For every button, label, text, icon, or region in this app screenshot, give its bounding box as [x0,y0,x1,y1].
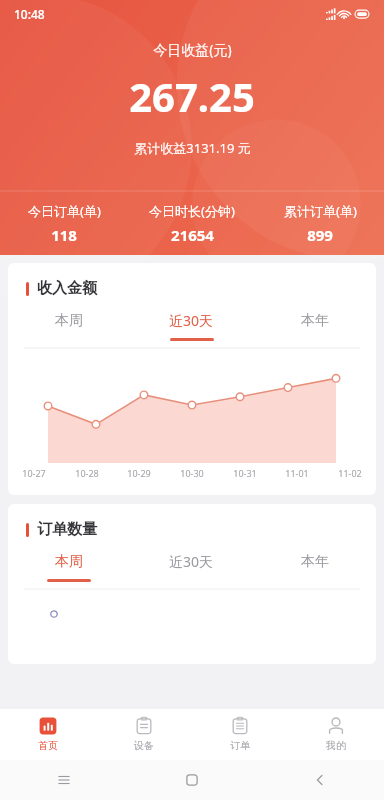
staticText: 今日时长(分钟) [149,202,235,220]
staticText: 首页 [38,739,58,752]
staticText: 10-27 [22,467,46,479]
button[interactable]: Recents [56,772,72,788]
button[interactable]: 本年 [253,545,376,589]
staticText: 899 [307,225,333,245]
staticText: 今日订单(单) [28,202,101,220]
staticText: 本年 [301,312,329,330]
button[interactable]: 设备 [96,708,192,760]
button[interactable]: 今日订单(单) [0,202,128,245]
button[interactable]: 订单 [192,708,288,760]
button[interactable]: 累计订单(单) [256,202,384,245]
staticText: 我的 [326,739,346,752]
staticText: 本周 [55,312,83,330]
staticText: 267.25 [129,69,255,123]
staticText: 11-01 [285,467,309,479]
button[interactable]: 首页 [0,708,96,760]
button[interactable]: 今日时长(分钟) [128,202,256,245]
staticText: 近30天 [169,311,214,330]
button[interactable]: Back [312,772,328,788]
staticText: 订单数量 [37,520,97,539]
staticText: 本年 [301,553,329,571]
staticText: 订单 [230,739,250,752]
staticText: 累计订单(单) [284,202,357,220]
staticText: 118 [51,225,77,245]
button[interactable]: 本周 [8,545,130,589]
staticText: 10-28 [75,467,99,479]
staticText: 10-30 [180,467,204,479]
button[interactable]: 近30天 [130,304,253,348]
staticText: 10-29 [127,467,151,479]
staticText: 累计收益3131.19 元 [134,139,251,157]
button[interactable]: 本周 [8,304,130,348]
staticText: 10-31 [233,467,257,479]
button[interactable]: Home [184,772,200,788]
staticText: 本周 [55,553,83,571]
button[interactable]: 我的 [288,708,384,760]
staticText: 设备 [134,739,154,752]
staticText: 10:48 [14,6,45,22]
staticText: 收入金额 [37,279,97,298]
staticText: 21654 [171,225,214,245]
staticText: 11-02 [338,467,362,479]
staticText: 今日收益(元) [153,40,232,59]
staticText: 近30天 [169,552,214,571]
button[interactable]: 本年 [253,304,376,348]
button[interactable]: 近30天 [130,545,253,589]
